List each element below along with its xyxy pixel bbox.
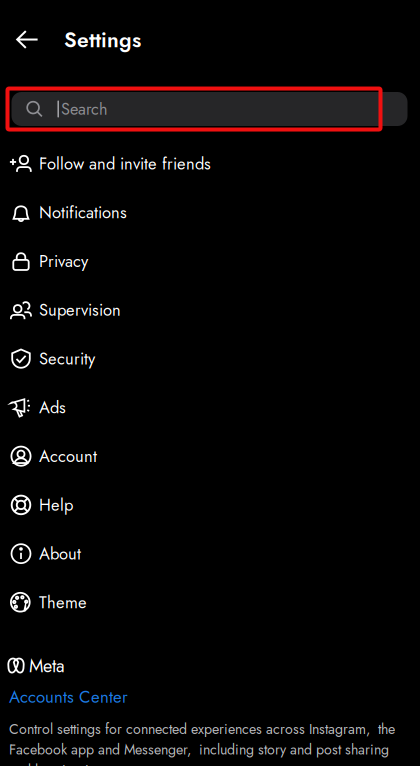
staticText: Account	[39, 444, 97, 468]
button[interactable]: Help	[0, 481, 420, 529]
button[interactable]: Notifications	[0, 188, 420, 237]
button[interactable]: Theme	[0, 578, 420, 627]
staticText: Notifications	[39, 200, 127, 224]
staticText: Ads	[39, 395, 66, 419]
staticText: Accounts Center	[9, 685, 128, 709]
staticText: Search	[61, 97, 108, 121]
button[interactable]: Back	[5, 17, 49, 61]
button[interactable]: About	[0, 529, 420, 578]
staticText: Security	[39, 347, 95, 371]
button[interactable]: Follow and invite friends	[0, 139, 420, 188]
button[interactable]: Accounts Center	[9, 685, 128, 709]
button[interactable]: Ads	[0, 383, 420, 432]
button[interactable]: Security	[0, 334, 420, 383]
staticText: Control settings for connected experienc…	[9, 719, 395, 766]
staticText: Theme	[39, 590, 87, 614]
staticText: Follow and invite friends	[39, 152, 211, 176]
staticText: Meta	[29, 653, 65, 679]
button[interactable]: Supervision	[0, 286, 420, 334]
staticText: Supervision	[39, 298, 121, 322]
button[interactable]: Account	[0, 432, 420, 481]
staticText: Help	[39, 493, 73, 517]
button[interactable]: Search	[11, 92, 407, 126]
staticText: Privacy	[39, 249, 88, 273]
button[interactable]: Privacy	[0, 237, 420, 286]
staticText: About	[39, 542, 81, 566]
staticText: Settings	[64, 25, 141, 55]
